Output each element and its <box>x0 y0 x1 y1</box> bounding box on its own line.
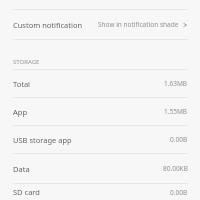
staticText: USB storage app <box>13 135 72 145</box>
staticText: 0.00B <box>170 188 188 197</box>
staticText: Data <box>13 164 30 174</box>
staticText: SD card <box>13 187 40 197</box>
staticText: 1.63MB <box>164 79 188 88</box>
staticText: Show in notification shade <box>98 20 179 29</box>
staticText: 80.00KB <box>163 164 188 173</box>
staticText: Custom notification <box>13 20 83 30</box>
button[interactable]: Data <box>0 154 200 183</box>
button[interactable]: Total <box>0 70 200 97</box>
staticText: Total <box>13 79 31 89</box>
staticText: 1.55MB <box>164 107 188 116</box>
button[interactable]: App <box>0 98 200 125</box>
button[interactable]: USB storage app <box>0 126 200 153</box>
button[interactable]: Custom notification <box>0 10 200 39</box>
staticText: STORAGE <box>13 58 40 66</box>
button[interactable]: SD card <box>0 184 200 200</box>
staticText: App <box>13 107 28 117</box>
staticText: 0.00B <box>170 135 188 144</box>
